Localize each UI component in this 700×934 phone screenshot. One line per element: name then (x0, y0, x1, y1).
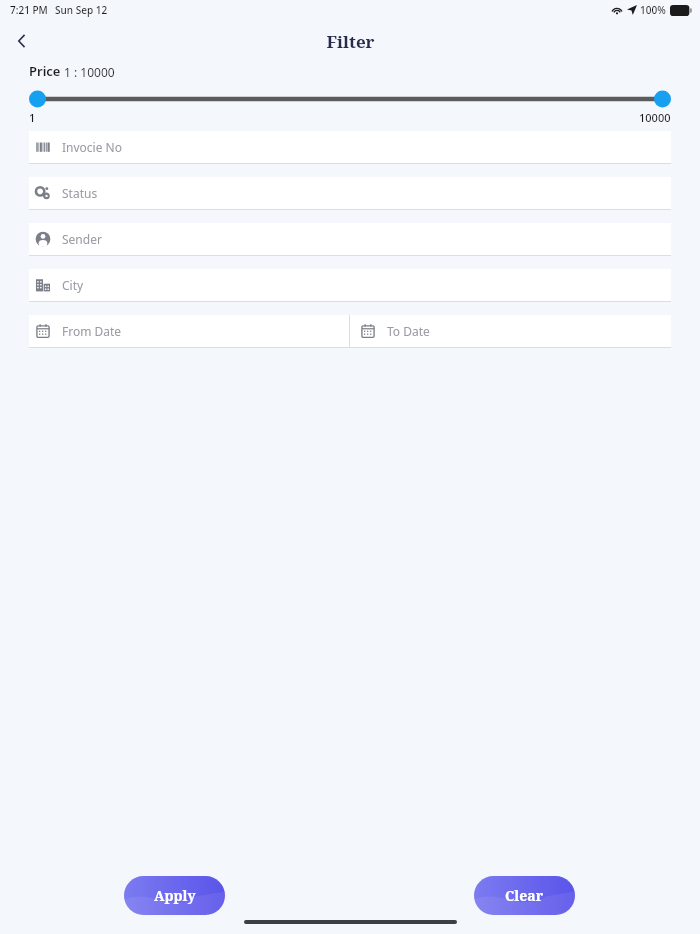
staticText: Invocie No (62, 139, 122, 155)
button[interactable] (29, 90, 671, 108)
button[interactable]: Status (29, 177, 671, 210)
button[interactable]: Back (4, 23, 40, 59)
staticText: 1 : 10000 (64, 64, 115, 80)
staticText: 7:21 PM (10, 3, 48, 17)
staticText: To Date (387, 323, 430, 339)
button[interactable]: To Date (350, 315, 671, 347)
staticText: Sun Sep 12 (55, 3, 108, 17)
staticText: Clear (505, 886, 544, 905)
button[interactable]: Clear (474, 876, 575, 915)
staticText: 10000 (639, 110, 671, 125)
staticText: Status (62, 185, 98, 201)
staticText: 100% (640, 3, 666, 17)
button[interactable]: Sender (29, 223, 671, 256)
staticText: From Date (62, 323, 122, 339)
button[interactable]: Apply (124, 876, 225, 915)
staticText: Price (29, 62, 64, 80)
staticText: 1 (29, 110, 36, 125)
button[interactable]: City (29, 269, 671, 302)
staticText: City (62, 277, 84, 293)
staticText: Apply (154, 886, 196, 905)
button[interactable]: From Date (29, 315, 349, 347)
button[interactable]: Invocie No (29, 131, 671, 164)
staticText: Filter (326, 30, 375, 53)
staticText: Sender (62, 231, 102, 247)
